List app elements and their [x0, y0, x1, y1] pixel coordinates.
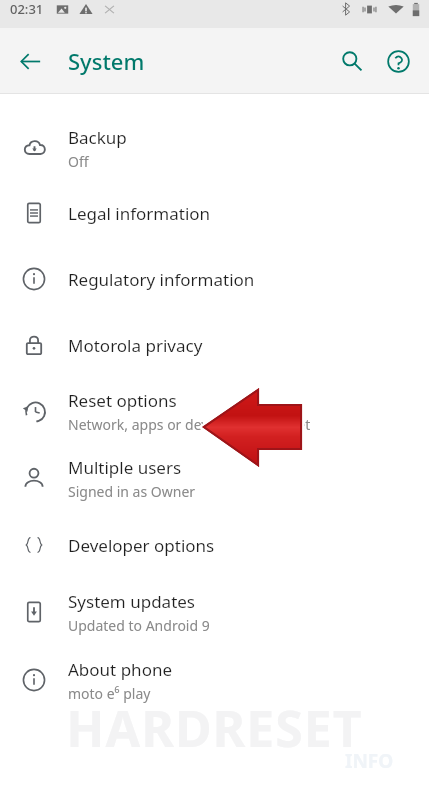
staticText: About phone	[68, 658, 173, 681]
staticText: Signed in as Owner	[68, 482, 196, 501]
button[interactable]: Motorola privacy	[0, 312, 429, 378]
staticText: Updated to Android 9	[68, 616, 210, 635]
button[interactable]: Back	[8, 39, 52, 83]
button[interactable]: Multiple users	[0, 444, 429, 512]
button[interactable]: Legal information	[0, 180, 429, 246]
staticText: Network, apps or device can be reset	[68, 415, 311, 434]
staticText: Multiple users	[68, 456, 182, 479]
staticText: INFO	[345, 748, 394, 774]
staticText: 02:31	[10, 0, 44, 18]
staticText: Reset options	[68, 389, 177, 412]
staticText: Developer options	[68, 534, 215, 557]
staticText: System	[68, 46, 145, 76]
staticText: System updates	[68, 590, 196, 613]
button[interactable]: Developer options	[0, 512, 429, 578]
staticText: Off	[68, 152, 89, 171]
staticText: HARDRESET	[0, 694, 429, 762]
staticText: Motorola privacy	[68, 334, 203, 357]
staticText: moto e⁶ play	[68, 684, 151, 703]
button[interactable]: Search	[329, 38, 375, 84]
button[interactable]: Backup	[0, 116, 429, 180]
button[interactable]: System updates	[0, 578, 429, 646]
button[interactable]: Regulatory information	[0, 246, 429, 312]
button[interactable]: Help	[375, 38, 421, 84]
staticText: Regulatory information	[68, 268, 255, 291]
staticText: Backup	[68, 126, 127, 149]
button[interactable]: About phone	[0, 646, 429, 714]
button[interactable]: Reset options	[0, 378, 429, 444]
staticText: Legal information	[68, 202, 211, 225]
